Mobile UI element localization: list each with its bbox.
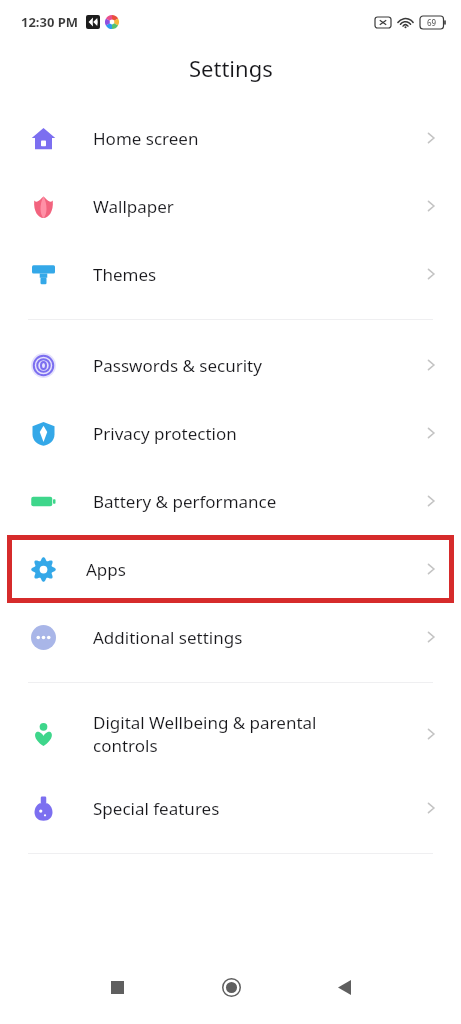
staticText: Special features [93, 797, 422, 820]
button[interactable]: Digital Wellbeing & parental controls [0, 694, 461, 774]
button[interactable]: Apps [7, 535, 454, 603]
staticText: 12:30 PM [21, 13, 79, 31]
staticText: Battery & performance [93, 490, 422, 513]
button[interactable]: Home [208, 964, 254, 1010]
staticText: Apps [86, 558, 422, 581]
button[interactable]: Back [321, 964, 367, 1010]
staticText: Digital Wellbeing & parental controls [93, 711, 422, 757]
button[interactable]: Passwords & security [0, 331, 461, 399]
staticText: Privacy protection [93, 422, 422, 445]
staticText: Home screen [93, 127, 422, 150]
staticText: Passwords & security [93, 354, 422, 377]
button[interactable]: Home screen [0, 104, 461, 172]
button[interactable]: Special features [0, 774, 461, 842]
button[interactable]: Battery & performance [0, 467, 461, 535]
button[interactable]: Additional settings [0, 603, 461, 671]
button[interactable]: Privacy protection [0, 399, 461, 467]
staticText: Wallpaper [93, 195, 422, 218]
staticText: Themes [93, 263, 422, 286]
staticText: Additional settings [93, 626, 422, 649]
button[interactable]: Wallpaper [0, 172, 461, 240]
button[interactable]: Themes [0, 240, 461, 308]
staticText: 69 [427, 17, 437, 28]
button[interactable]: Recent apps [94, 964, 140, 1010]
staticText: Settings [189, 53, 273, 83]
